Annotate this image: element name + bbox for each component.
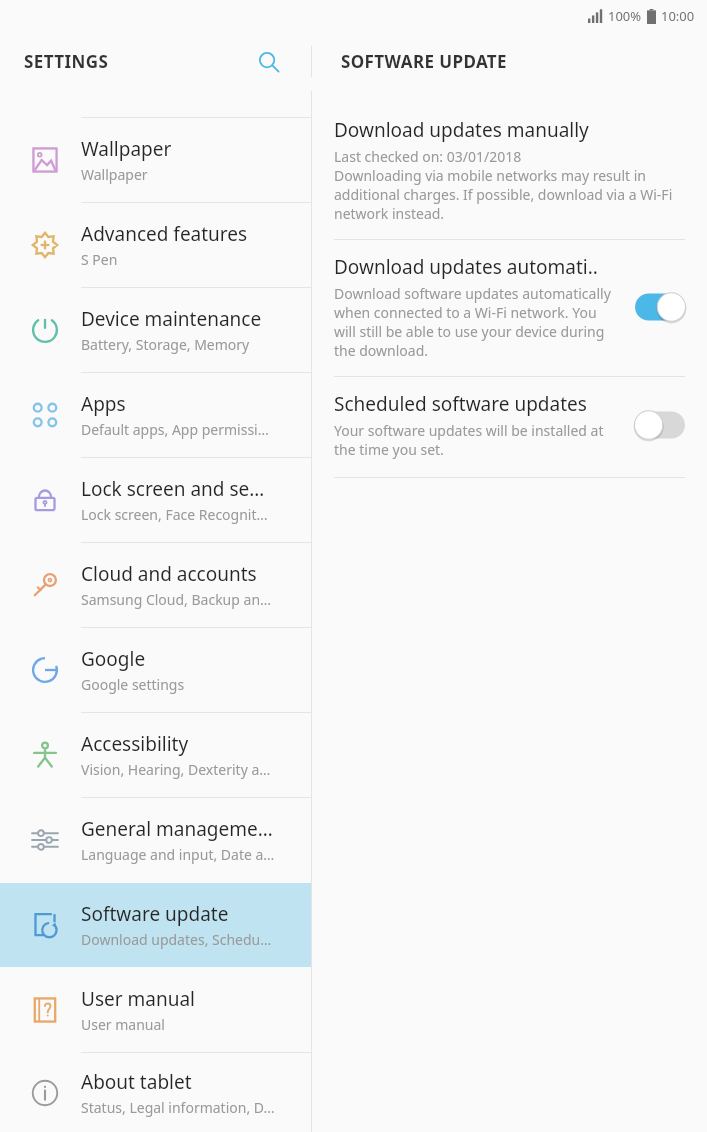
staticText: Cloud and accounts: [81, 561, 257, 587]
staticText: 10:00: [661, 7, 695, 25]
staticText: User manual: [81, 986, 195, 1012]
staticText: S Pen: [81, 250, 118, 269]
staticText: SETTINGS: [24, 50, 109, 73]
staticText: Scheduled software updates: [334, 391, 587, 417]
button[interactable]: Apps: [0, 373, 311, 457]
staticText: Download updates automati..: [334, 254, 598, 280]
button[interactable]: General manageme…: [0, 798, 311, 882]
staticText: Google settings: [81, 675, 185, 694]
button[interactable]: User manual: [0, 968, 311, 1052]
staticText: Lock screen, Face Recognit…: [81, 505, 268, 524]
staticText: Wallpaper: [81, 165, 148, 184]
button[interactable]: Wallpaper: [0, 118, 311, 202]
button[interactable]: Device maintenance: [0, 288, 311, 372]
button[interactable]: Toggle off: [631, 408, 689, 442]
button[interactable]: Accessibility: [0, 713, 311, 797]
staticText: Download software updates automatically …: [334, 284, 619, 360]
button[interactable]: Scheduled software updates: [312, 377, 707, 477]
button[interactable]: Search: [249, 42, 289, 82]
staticText: Battery, Storage, Memory: [81, 335, 250, 354]
staticText: Downloading via mobile networks may resu…: [334, 166, 685, 223]
button[interactable]: Lock screen and se…: [0, 458, 311, 542]
staticText: 100%: [608, 7, 642, 25]
staticText: General manageme…: [81, 816, 273, 842]
staticText: Download updates manually: [334, 117, 589, 143]
button[interactable]: Toggle on: [631, 290, 689, 324]
staticText: Last checked on: 03/01/2018: [334, 147, 522, 166]
staticText: User manual: [81, 1015, 165, 1034]
staticText: Samsung Cloud, Backup an…: [81, 590, 272, 609]
staticText: Lock screen and se…: [81, 476, 265, 502]
staticText: Software update: [81, 901, 229, 927]
staticText: About tablet: [81, 1069, 192, 1095]
button[interactable]: Download updates manually: [312, 105, 707, 239]
button[interactable]: About tablet: [0, 1053, 311, 1132]
staticText: Vision, Hearing, Dexterity a…: [81, 760, 271, 779]
staticText: Apps: [81, 391, 126, 417]
button[interactable]: Advanced features: [0, 203, 311, 287]
staticText: Download updates, Schedu…: [81, 930, 272, 949]
staticText: Language and input, Date a…: [81, 845, 275, 864]
button[interactable]: Cloud and accounts: [0, 543, 311, 627]
button[interactable]: Software update: [0, 883, 311, 967]
staticText: Device maintenance: [81, 306, 262, 332]
staticText: Status, Legal information, D…: [81, 1098, 275, 1117]
staticText: Your software updates will be installed …: [334, 421, 619, 459]
staticText: Wallpaper: [81, 136, 172, 162]
button[interactable]: Google: [0, 628, 311, 712]
staticText: Google: [81, 646, 146, 672]
staticText: Advanced features: [81, 221, 248, 247]
staticText: Default apps, App permissi…: [81, 420, 269, 439]
staticText: SOFTWARE UPDATE: [341, 50, 507, 73]
staticText: Accessibility: [81, 731, 189, 757]
button[interactable]: Download updates automati..: [312, 240, 707, 376]
